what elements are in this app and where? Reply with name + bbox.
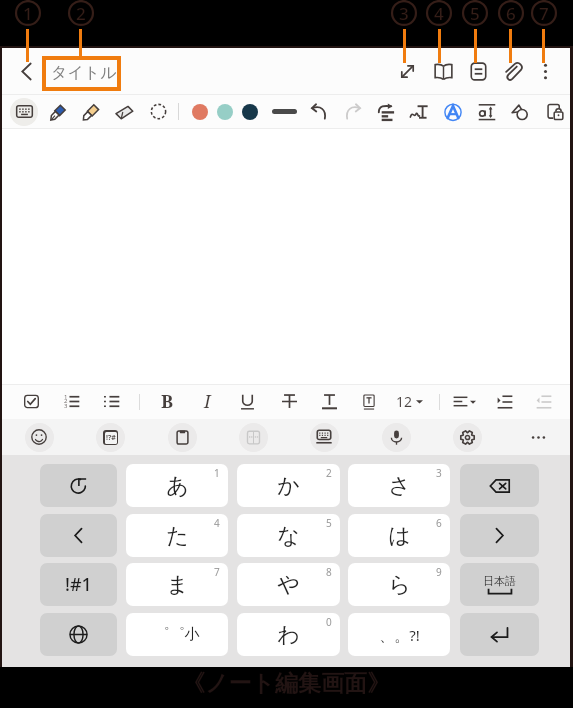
button[interactable]: Key	[348, 464, 450, 507]
button[interactable]: Checklist	[15, 384, 47, 419]
button[interactable]: Stroke width	[272, 109, 297, 114]
button[interactable]: Text box	[353, 384, 385, 419]
staticText: 6	[506, 2, 516, 25]
button[interactable]: Settings	[451, 419, 483, 455]
staticText: ら	[388, 571, 411, 599]
button[interactable]: Key	[237, 613, 340, 656]
button[interactable]: Key	[126, 563, 228, 606]
button[interactable]: Pen	[42, 94, 74, 129]
button[interactable]: Key	[348, 613, 450, 656]
staticText: 5	[470, 2, 480, 25]
button[interactable]: Symbols	[40, 563, 117, 606]
button[interactable]: Backspace	[460, 464, 539, 507]
staticText: 12	[396, 392, 413, 411]
button[interactable]: タイトル	[46, 58, 121, 88]
button[interactable]: Right	[460, 514, 539, 557]
button[interactable]: Undo	[40, 464, 117, 507]
staticText: あ	[166, 472, 189, 500]
staticText: か	[277, 472, 300, 500]
button[interactable]: Undo	[303, 94, 335, 129]
button[interactable]: Italic	[191, 384, 223, 419]
staticText: は	[388, 522, 411, 550]
button[interactable]: Clipboard	[166, 419, 198, 455]
staticText: 6	[436, 516, 442, 530]
staticText: 2	[76, 2, 86, 25]
button[interactable]: Enter	[460, 613, 539, 656]
button[interactable]: Keyboard	[8, 94, 40, 129]
button[interactable]: Key	[348, 563, 450, 606]
staticText: 2	[326, 466, 332, 480]
button[interactable]: Increase indent	[489, 384, 521, 419]
button[interactable]: Language	[40, 613, 117, 656]
button[interactable]: Key	[126, 613, 228, 656]
button[interactable]: Spell check	[437, 94, 469, 129]
staticText: 7	[214, 565, 220, 579]
staticText: や	[277, 571, 300, 599]
button[interactable]: Symbols	[94, 419, 126, 455]
button[interactable]: Font size	[390, 384, 428, 419]
staticText: 4	[214, 516, 220, 530]
staticText: た	[166, 522, 189, 550]
staticText: 4	[434, 2, 444, 25]
button[interactable]: Underline	[231, 384, 263, 419]
button[interactable]: More options	[528, 50, 562, 92]
staticText: !?#	[106, 433, 116, 443]
button[interactable]: Key	[126, 514, 228, 557]
button[interactable]: Space	[460, 563, 539, 606]
staticText: 2	[64, 397, 68, 405]
button[interactable]: Keyboard mode	[308, 419, 340, 455]
button[interactable]: Key	[237, 464, 340, 507]
staticText: 日本語	[483, 574, 516, 588]
staticText: ゜゜小	[154, 625, 200, 644]
button[interactable]: Lock	[540, 94, 572, 129]
button[interactable]: Bold	[151, 384, 183, 419]
button[interactable]: Key	[237, 563, 340, 606]
button[interactable]: Alignment	[446, 384, 482, 419]
staticText: な	[277, 522, 300, 550]
button[interactable]: Shapes	[504, 94, 536, 129]
button[interactable]: Convert to text	[370, 94, 402, 129]
button[interactable]: Highlighter	[75, 94, 107, 129]
button[interactable]: Lasso select	[142, 94, 174, 129]
staticText: B	[161, 389, 174, 414]
button[interactable]: Back	[8, 53, 44, 89]
button[interactable]: Text size	[471, 94, 503, 129]
button[interactable]: Redo	[336, 94, 368, 129]
button[interactable]: Key	[237, 514, 340, 557]
button[interactable]: Left	[40, 514, 117, 557]
button[interactable]: Emoji	[23, 419, 55, 455]
button[interactable]: Key	[348, 514, 450, 557]
staticText: 8	[326, 565, 332, 579]
staticText: 3	[399, 2, 409, 25]
button[interactable]: Strikethrough	[273, 384, 305, 419]
button[interactable]: Pages	[461, 50, 495, 92]
staticText: !#1	[65, 572, 92, 597]
button[interactable]: Split keyboard	[237, 419, 269, 455]
staticText: 1	[64, 393, 68, 401]
button[interactable]: Handwriting to text	[403, 94, 435, 129]
staticText: 《ノート編集画面》	[182, 669, 391, 698]
staticText: I	[204, 389, 211, 414]
button[interactable]: Expand	[390, 50, 424, 92]
button[interactable]: Bulleted list	[95, 384, 127, 419]
button[interactable]: Decrease indent	[528, 384, 560, 419]
button[interactable]: Eraser	[108, 94, 140, 129]
button[interactable]: Attach	[497, 50, 531, 92]
staticText: 1	[214, 466, 220, 480]
staticText: 1	[23, 2, 33, 25]
staticText: タイトル	[51, 63, 117, 83]
staticText: わ	[277, 621, 300, 649]
button[interactable]: Numbered list	[55, 384, 87, 419]
button[interactable]: Pen colour	[188, 94, 212, 129]
staticText: さ	[388, 472, 411, 500]
staticText: 7	[539, 2, 549, 25]
staticText: ま	[166, 571, 189, 599]
button[interactable]: Voice input	[380, 419, 412, 455]
button[interactable]: Pen colour	[213, 94, 237, 129]
button[interactable]: Key	[126, 464, 228, 507]
button[interactable]: Pen colour	[238, 94, 262, 129]
button[interactable]: Text colour	[313, 384, 345, 419]
button[interactable]: More	[522, 419, 554, 455]
staticText: 5	[326, 516, 332, 530]
button[interactable]: Reader view	[426, 50, 460, 92]
